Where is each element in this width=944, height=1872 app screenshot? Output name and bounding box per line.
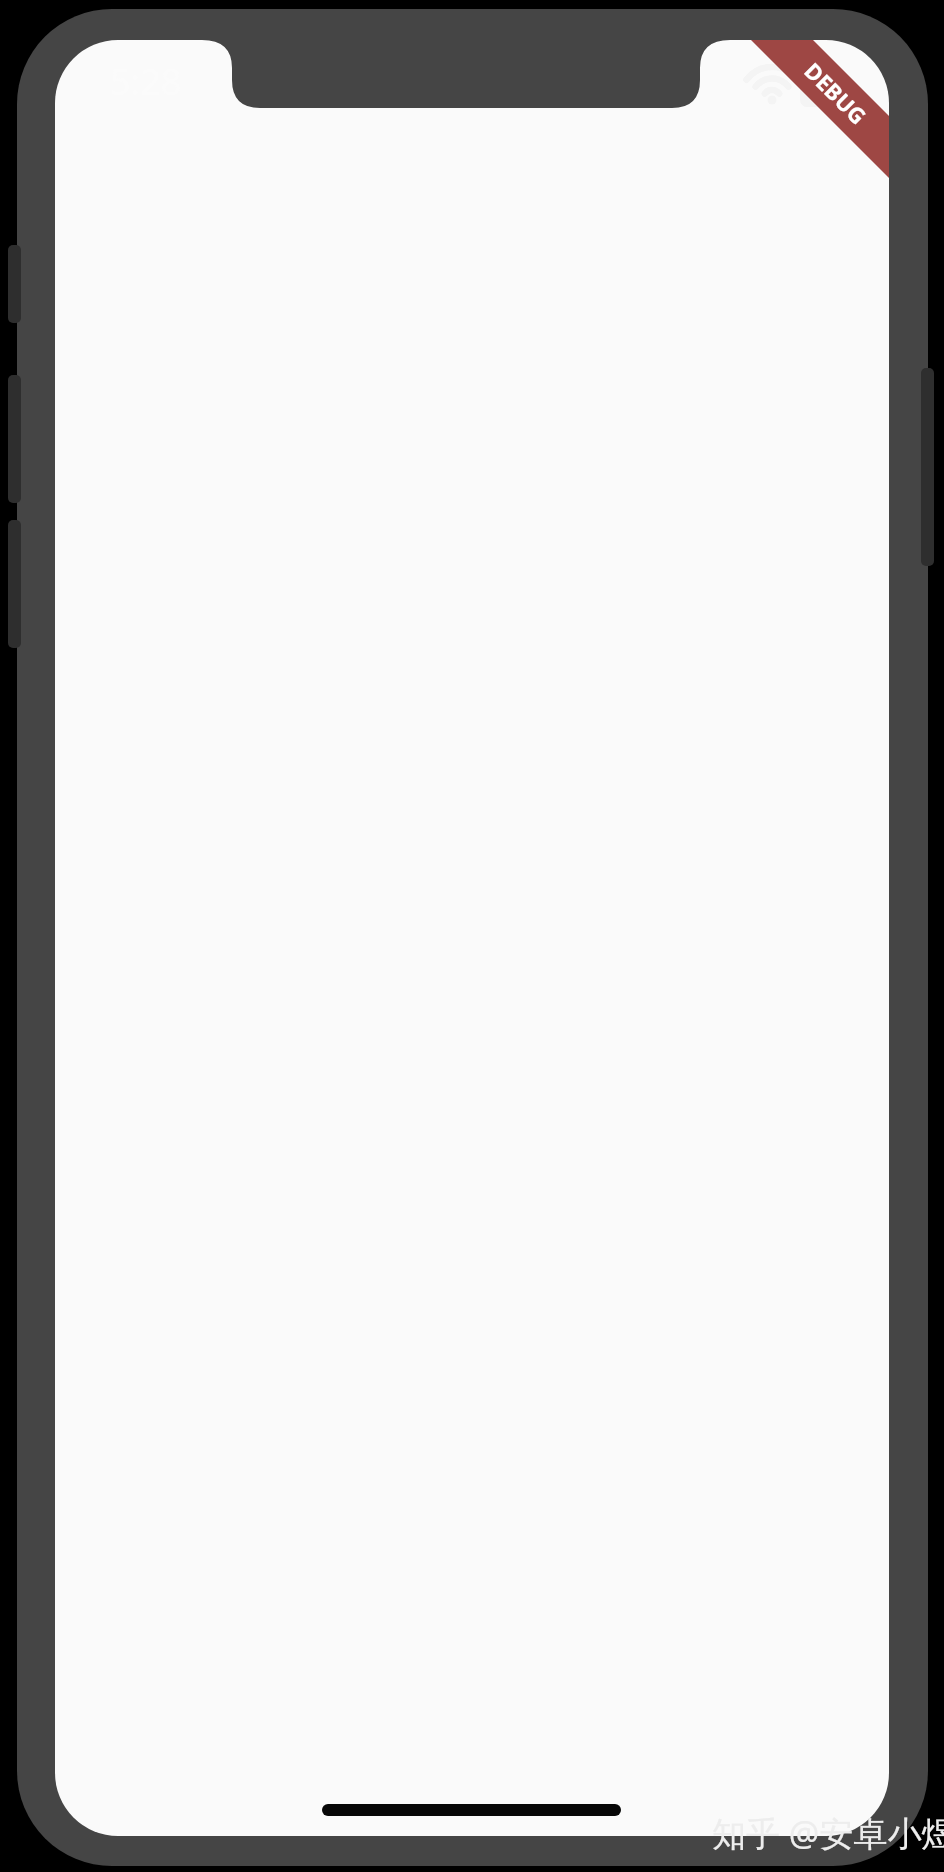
button[interactable]: Phone mockup (0, 0, 944, 1872)
